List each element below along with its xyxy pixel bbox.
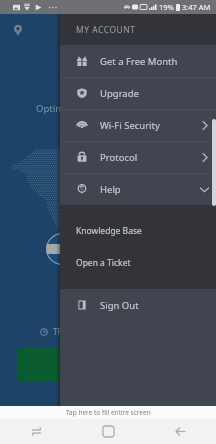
button[interactable]: Back [144,419,216,444]
button[interactable]: Tap here to fill entire screen [0,406,216,419]
staticText: Knowledge Base [76,225,142,237]
staticText: MY ACCOUNT [76,24,136,36]
button[interactable]: Recent apps [0,419,72,444]
staticText: Optimal location [36,102,110,115]
button[interactable] [17,347,112,381]
button[interactable]: Help [60,173,216,205]
staticText: Upgrade [100,87,139,100]
staticText: Protocol [100,151,138,164]
button[interactable]: Knowledge Base [60,215,216,247]
button[interactable]: Upgrade [60,77,216,109]
button[interactable]: Home [72,419,144,444]
button[interactable]: Get a Free Month [60,45,216,77]
staticText: 3:47 AM [182,2,211,12]
staticText: Help [100,183,121,196]
button[interactable]: Protocol [60,141,216,173]
staticText: Open a Ticket [76,257,131,269]
button[interactable]: Wi-Fi Security [60,109,216,141]
button[interactable]: Open a Ticket [60,247,216,279]
staticText: 19% [159,2,174,12]
button[interactable]: Location [6,19,29,42]
staticText: Wi-Fi Security [100,119,160,132]
staticText: TRUSTED [53,326,88,337]
staticText: Sign Out [100,299,139,312]
button[interactable]: Sign Out [60,289,216,321]
staticText: Get a Free Month [100,55,178,68]
staticText: Tap here to fill entire screen [66,408,151,417]
